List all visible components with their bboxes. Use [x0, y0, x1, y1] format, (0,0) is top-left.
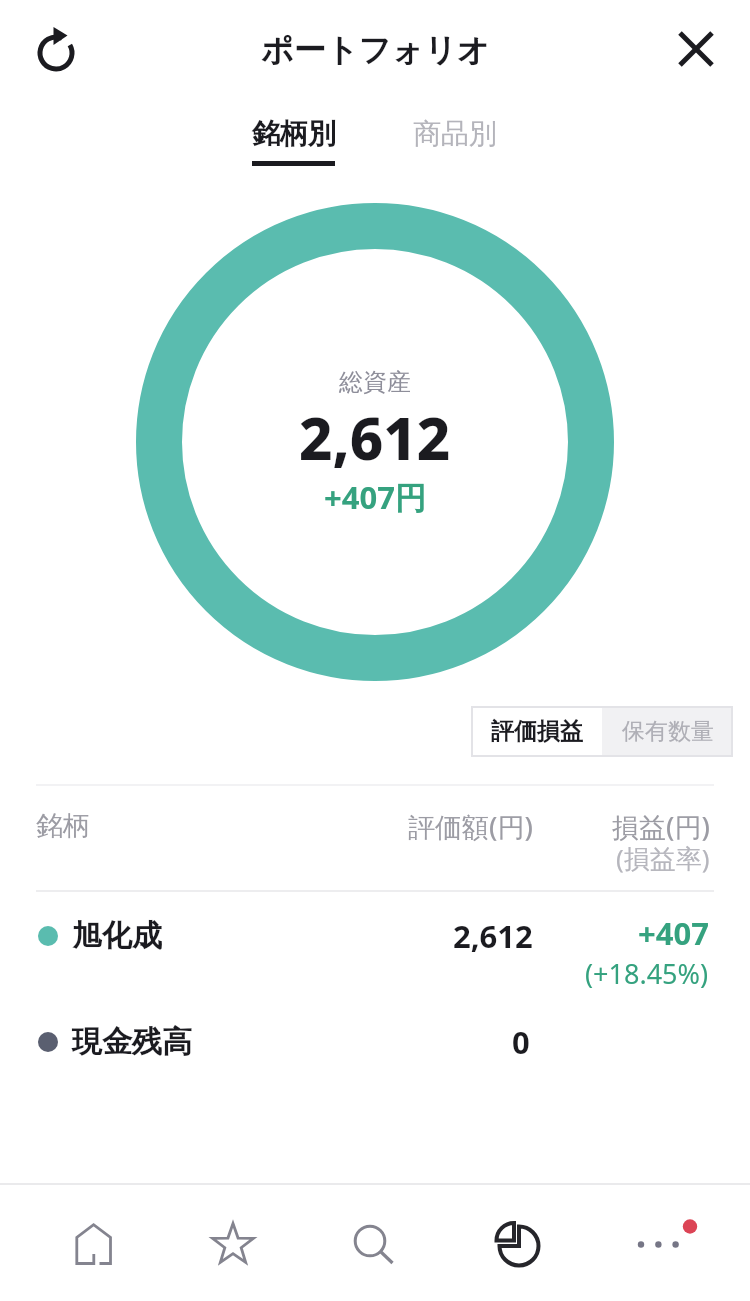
- staticText: (損益率): [616, 840, 710, 876]
- staticText: +407: [638, 912, 709, 954]
- button[interactable]: [244, 103, 344, 169]
- button[interactable]: [316, 1190, 426, 1295]
- staticText: 総資産: [339, 367, 411, 397]
- button[interactable]: [28, 25, 84, 81]
- button[interactable]: [602, 1190, 712, 1295]
- button[interactable]: [0, 896, 750, 978]
- staticText: 商品別: [413, 116, 497, 151]
- staticText: 現金残高: [72, 1023, 192, 1061]
- button[interactable]: [38, 1190, 148, 1295]
- button[interactable]: [178, 1190, 288, 1295]
- staticText: 旭化成: [72, 917, 162, 955]
- staticText: 評価損益: [491, 717, 583, 746]
- staticText: 銘柄別: [252, 116, 336, 151]
- staticText: 0: [512, 1021, 530, 1063]
- staticText: 評価額(円): [408, 808, 533, 845]
- button[interactable]: 保有数量: [602, 706, 733, 757]
- button[interactable]: [668, 22, 724, 78]
- button[interactable]: [464, 1190, 574, 1295]
- staticText: 銘柄: [36, 809, 90, 843]
- button[interactable]: [0, 1002, 750, 1082]
- button[interactable]: [405, 103, 505, 163]
- staticText: 2,612: [299, 398, 451, 477]
- staticText: +407円: [324, 476, 426, 518]
- staticText: 2,612: [453, 915, 533, 957]
- staticText: 保有数量: [622, 717, 714, 746]
- button[interactable]: 評価損益: [471, 706, 602, 757]
- staticText: ポートフォリオ: [261, 30, 490, 70]
- staticText: (+18.45%): [585, 955, 709, 992]
- staticText: 損益(円): [612, 808, 710, 845]
